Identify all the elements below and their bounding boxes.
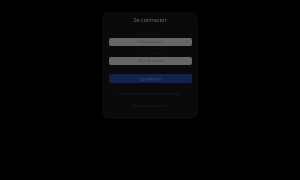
staticText: Mot de passe perdu?	[133, 103, 168, 108]
button[interactable]: Connexion	[109, 74, 192, 83]
staticText: Se connecter	[133, 16, 167, 24]
staticText: Connexion	[139, 76, 162, 82]
button[interactable]: Pseudonyme	[109, 38, 192, 46]
staticText: Mot de passe	[138, 58, 164, 64]
button[interactable]: Vous possedez un code d'inscription?	[102, 91, 198, 96]
staticText: Pseudonyme	[138, 39, 163, 45]
staticText: Vous possedez un code d'inscription?	[119, 91, 181, 96]
button[interactable]: Mot de passe	[109, 57, 192, 65]
